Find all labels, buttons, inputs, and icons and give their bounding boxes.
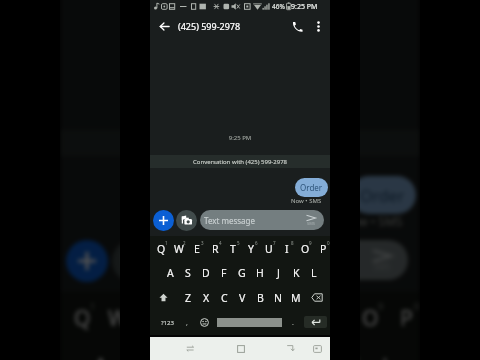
button[interactable]: Emoji: [197, 310, 212, 335]
button[interactable]: U: [258, 236, 276, 260]
button[interactable]: Camera: [176, 210, 197, 231]
staticText: T: [230, 242, 236, 256]
staticText: J: [314, 352, 320, 360]
staticText: M: [291, 291, 301, 305]
staticText: 46%: [272, 2, 285, 11]
button[interactable]: H: [258, 340, 294, 360]
button[interactable]: Space: [216, 310, 283, 335]
staticText: Conversation with (425) 599-2978: [193, 158, 288, 166]
staticText: G: [236, 352, 252, 360]
button[interactable]: N: [267, 285, 285, 310]
button[interactable]: J: [294, 340, 330, 360]
button[interactable]: Home: [231, 337, 251, 360]
button[interactable]: Text message: [160, 240, 408, 280]
button[interactable]: L: [303, 260, 321, 285]
staticText: 9:25 PM: [150, 134, 330, 142]
button[interactable]: Text message: [200, 210, 324, 230]
staticText: ?123: [161, 319, 174, 327]
staticText: P: [320, 242, 327, 256]
button[interactable]: Add attachment: [66, 240, 108, 282]
staticText: O: [301, 242, 310, 256]
button[interactable]: Call: [284, 14, 308, 38]
button[interactable]: Y: [240, 292, 276, 340]
button[interactable]: A: [78, 340, 114, 360]
button[interactable]: Enter: [304, 316, 327, 328]
staticText: H: [256, 266, 264, 280]
staticText: I: [285, 242, 289, 256]
button[interactable]: Back: [280, 337, 300, 360]
button[interactable]: G: [222, 340, 258, 360]
button[interactable]: M: [285, 285, 303, 310]
button[interactable]: B: [249, 285, 267, 310]
button[interactable]: Q: [60, 292, 96, 340]
staticText: W: [174, 242, 184, 256]
button[interactable]: T: [222, 236, 240, 260]
button[interactable]: D: [195, 260, 213, 285]
button[interactable]: Keyboard: [307, 337, 327, 360]
staticText: 9: [309, 240, 312, 246]
button[interactable]: Y: [240, 236, 258, 260]
button[interactable]: R: [168, 292, 204, 340]
staticText: V: [239, 291, 246, 305]
button[interactable]: J: [267, 260, 285, 285]
button[interactable]: F: [213, 260, 231, 285]
button[interactable]: O: [294, 236, 312, 260]
staticText: Now • SMS: [342, 214, 404, 230]
button[interactable]: E: [186, 236, 204, 260]
staticText: 7: [273, 240, 276, 246]
button[interactable]: More options: [308, 16, 328, 36]
button[interactable]: O: [348, 292, 384, 340]
staticText: Conversation with (425) 599-2978: [146, 136, 336, 152]
staticText: Text message: [204, 215, 256, 226]
button[interactable]: Recents: [180, 337, 200, 360]
staticText: 8: [291, 240, 294, 246]
button[interactable]: .: [286, 310, 300, 335]
button[interactable]: X: [195, 285, 213, 310]
button[interactable]: S: [177, 260, 195, 285]
button[interactable]: Camera: [112, 240, 154, 282]
staticText: D: [202, 266, 210, 280]
button[interactable]: T: [204, 292, 240, 340]
button[interactable]: P: [384, 292, 420, 340]
button[interactable]: Add attachment: [153, 210, 174, 231]
staticText: Now • SMS: [291, 197, 322, 205]
button[interactable]: A: [159, 260, 177, 285]
button[interactable]: Z: [177, 285, 195, 310]
button[interactable]: P: [312, 236, 330, 260]
button[interactable]: G: [231, 260, 249, 285]
button[interactable]: K: [285, 260, 303, 285]
button[interactable]: Back: [150, 13, 178, 39]
button[interactable]: Shift: [150, 285, 177, 310]
button[interactable]: W: [168, 236, 186, 260]
button[interactable]: I: [276, 236, 294, 260]
button[interactable]: ,: [180, 310, 194, 335]
button[interactable]: W: [96, 292, 132, 340]
button[interactable]: Order: [295, 178, 328, 197]
button[interactable]: F: [186, 340, 222, 360]
button[interactable]: R: [204, 236, 222, 260]
staticText: 9:25 PM: [60, 88, 420, 104]
staticText: P: [400, 304, 414, 332]
button[interactable]: I: [312, 292, 348, 340]
button[interactable]: V: [231, 285, 249, 310]
button[interactable]: C: [213, 285, 231, 310]
button[interactable]: Q: [150, 236, 168, 260]
staticText: Y: [248, 242, 254, 256]
button[interactable]: H: [249, 260, 267, 285]
button[interactable]: Backspace: [303, 285, 330, 310]
button[interactable]: E: [132, 292, 168, 340]
button[interactable]: ?123: [157, 310, 177, 335]
button[interactable]: U: [276, 292, 312, 340]
button[interactable]: Order: [350, 176, 416, 214]
